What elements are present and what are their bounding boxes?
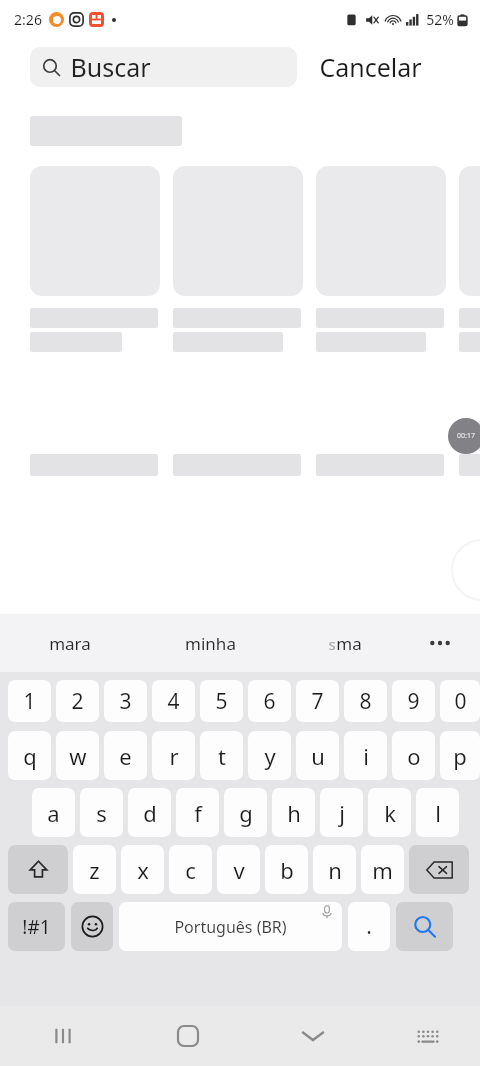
staticText: o [407,741,421,771]
button[interactable]: g [224,788,267,837]
staticText: Português (BR) [174,916,287,938]
button[interactable]: w [56,731,99,780]
staticText: c [185,855,196,885]
button[interactable]: Cancelar [315,44,426,90]
button[interactable]: p [440,731,480,780]
button[interactable]: m [361,845,404,894]
staticText: b [280,855,294,885]
button[interactable]: z [73,845,116,894]
staticText: v [233,855,245,885]
button[interactable]: 1 [8,680,51,722]
staticText: l [435,798,441,828]
button[interactable]: l [416,788,459,837]
button[interactable]: Shift [8,845,68,894]
staticText: w [69,741,87,771]
staticText: minha [185,632,236,655]
staticText: a [47,798,60,828]
button[interactable]: minha [140,621,280,665]
staticText: mara [49,632,91,655]
staticText: 4 [167,687,180,716]
button[interactable]: Português (BR) [119,902,342,951]
button[interactable]: Emoji [71,902,113,951]
button[interactable]: v [217,845,260,894]
staticText: q [23,741,37,771]
button[interactable]: 2 [56,680,99,722]
staticText: 3 [119,687,132,716]
button[interactable]: Buscar [30,47,297,87]
button[interactable]: q [8,731,51,780]
staticText: s [328,634,336,654]
button[interactable]: s [280,621,410,665]
staticText: f [194,798,202,828]
button[interactable]: 8 [344,680,387,722]
button[interactable]: a [32,788,75,837]
staticText: 6 [263,687,276,716]
button[interactable]: !#1 [8,902,65,951]
button[interactable]: b [265,845,308,894]
staticText: k [384,798,396,828]
button[interactable]: 6 [248,680,291,722]
staticText: Cancelar [319,50,422,84]
staticText: !#1 [22,914,51,940]
button[interactable]: 5 [200,680,243,722]
button[interactable]: Backspace [409,845,469,894]
staticText: 1 [23,687,36,716]
staticText: u [311,741,325,771]
staticText: j [339,798,345,828]
button[interactable]: 7 [296,680,339,722]
button[interactable]: . [348,902,390,951]
button[interactable]: h [272,788,315,837]
button[interactable]: x [121,845,164,894]
staticText: g [239,798,253,828]
button[interactable]: mara [0,621,140,665]
staticText: n [328,855,342,885]
button[interactable]: d [128,788,171,837]
button[interactable]: y [248,731,291,780]
button[interactable]: r [152,731,195,780]
staticText: . [366,912,372,941]
staticText: Buscar [70,50,151,84]
button[interactable]: Change keyboard [393,1011,463,1061]
button[interactable]: n [313,845,356,894]
button[interactable]: c [169,845,212,894]
button[interactable]: Recent apps [18,1011,108,1061]
button[interactable]: o [392,731,435,780]
staticText: e [119,741,132,771]
staticText: p [453,741,467,771]
button[interactable]: i [344,731,387,780]
staticText: m [372,855,393,885]
staticText: z [89,855,100,885]
button[interactable]: e [104,731,147,780]
staticText: 00:17 [457,431,475,441]
staticText: x [137,855,149,885]
button[interactable]: t [200,731,243,780]
button[interactable]: 9 [392,680,435,722]
staticText: 7 [311,687,324,716]
staticText: 8 [359,687,372,716]
button[interactable]: Hide keyboard [268,1011,358,1061]
staticText: 9 [407,687,420,716]
button[interactable]: Home [143,1011,233,1061]
button[interactable]: k [368,788,411,837]
button[interactable]: 3 [104,680,147,722]
staticText: t [218,741,226,771]
staticText: i [363,741,369,771]
button[interactable]: j [320,788,363,837]
button[interactable]: u [296,731,339,780]
staticText: 5 [215,687,228,716]
staticText: 2:26 [14,10,42,29]
staticText: r [169,741,179,771]
button[interactable]: More suggestions [410,621,470,665]
staticText: 2 [71,687,84,716]
button[interactable]: Search [396,902,453,951]
staticText: 0 [454,687,467,716]
button[interactable]: 4 [152,680,195,722]
staticText: h [287,798,301,828]
button[interactable]: s [80,788,123,837]
button[interactable]: 0 [440,680,480,722]
button[interactable]: f [176,788,219,837]
